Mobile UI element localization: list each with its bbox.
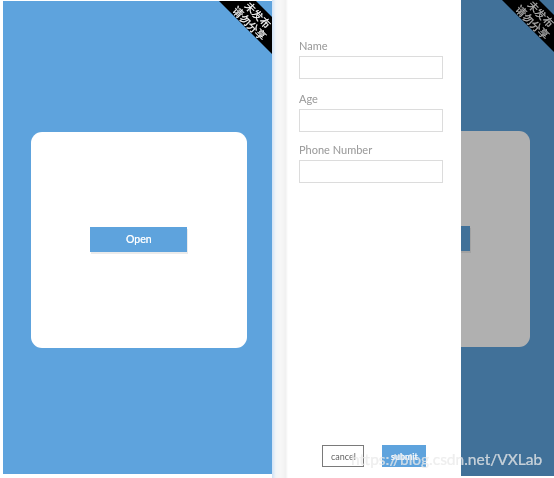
button[interactable]: Open [373, 226, 470, 251]
staticText: 未发布 请勿分享 [230, 1, 272, 43]
staticText: Open [126, 233, 152, 246]
staticText: 未发布 请勿分享 [513, 0, 554, 42]
staticText: Phone Number [299, 143, 373, 156]
staticText: Name [299, 39, 328, 52]
button[interactable]: cancel [322, 445, 364, 467]
button[interactable] [299, 109, 443, 132]
staticText: cancel [331, 451, 356, 462]
staticText: https://blog.csdn.net/VXLab [351, 450, 543, 469]
staticText: Age [299, 92, 318, 105]
button[interactable] [299, 56, 443, 79]
button[interactable] [299, 160, 443, 183]
button[interactable]: submit [382, 445, 426, 467]
staticText: submit [391, 451, 418, 462]
button[interactable]: Open [90, 227, 187, 252]
